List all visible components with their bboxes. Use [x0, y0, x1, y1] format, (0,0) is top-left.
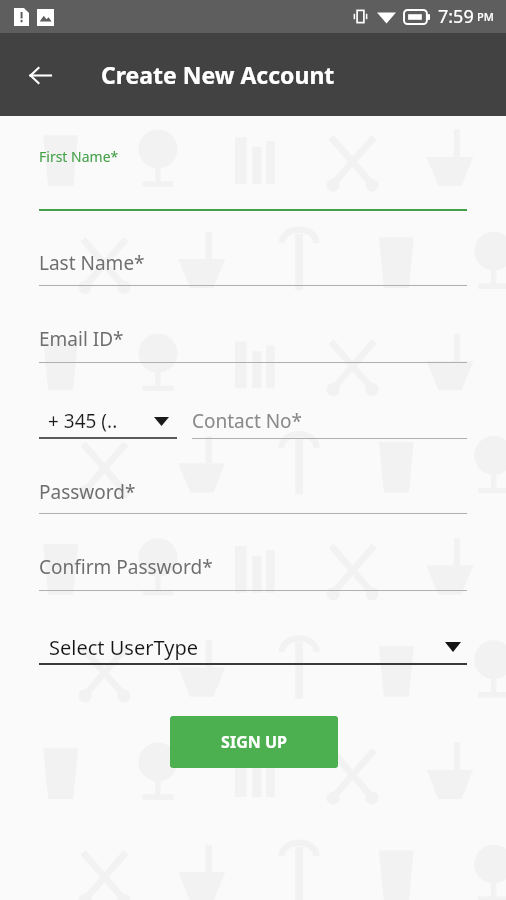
button[interactable]: Select UserType	[39, 625, 467, 669]
staticText: Last Name*	[39, 250, 145, 276]
staticText: 7:59	[438, 4, 474, 29]
staticText: Confirm Password*	[39, 554, 213, 580]
button[interactable]: SIGN UP	[170, 716, 338, 768]
button[interactable]: Back	[16, 51, 64, 99]
staticText: SIGN UP	[221, 731, 287, 753]
button[interactable]: Last Name*	[39, 250, 467, 291]
staticText: Create New Account	[101, 59, 335, 90]
staticText: Password*	[39, 479, 136, 505]
staticText: Email ID*	[39, 326, 124, 352]
button[interactable]: Confirm Password*	[39, 554, 467, 596]
button[interactable]: Password*	[39, 479, 467, 519]
button[interactable]: Email ID*	[39, 326, 467, 368]
staticText: First Name*	[39, 147, 119, 166]
staticText: + 345 (..	[48, 408, 118, 434]
button[interactable]: First Name	[39, 164, 467, 210]
button[interactable]: + 345 (..	[39, 402, 177, 444]
staticText: Contact No*	[192, 408, 303, 434]
staticText: Select UserType	[49, 634, 198, 661]
staticText: PM	[477, 9, 494, 24]
button[interactable]: Contact No*	[192, 402, 467, 444]
